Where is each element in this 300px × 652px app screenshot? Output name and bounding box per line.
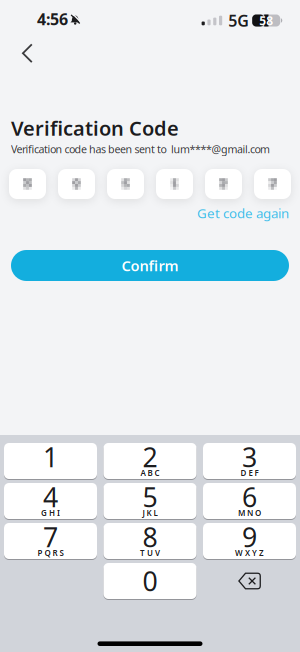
staticText: 6 [242, 479, 257, 515]
button[interactable]: Code digit 1 [9, 169, 46, 199]
staticText: A B C [140, 468, 159, 478]
button[interactable]: 0 [103, 563, 196, 599]
staticText: D E F [240, 468, 258, 478]
staticText: M N O [238, 508, 261, 518]
button[interactable]: Code digit 2 [58, 169, 95, 199]
staticText: 3 [242, 439, 257, 475]
staticText: 0 [142, 563, 157, 599]
staticText: P Q R S [37, 548, 63, 558]
button[interactable]: Back [0, 44, 33, 63]
button[interactable]: Code digit 5 [205, 169, 242, 199]
button[interactable]: 3 [203, 443, 296, 479]
staticText: W X Y Z [235, 548, 264, 558]
button[interactable]: 6 [203, 483, 296, 519]
staticText: Get code again [197, 204, 289, 222]
button[interactable]: 5 [103, 483, 196, 519]
staticText: 9 [242, 519, 257, 555]
button[interactable]: Code digit 3 [107, 169, 144, 199]
staticText: 58 [259, 12, 273, 28]
staticText: J K L [142, 508, 157, 518]
staticText: 4 [43, 479, 58, 515]
button[interactable]: 8 [103, 523, 196, 559]
button[interactable]: 7 [4, 523, 97, 559]
button[interactable]: Get code again [197, 204, 300, 222]
staticText: Verification Code [11, 115, 179, 141]
staticText: G H I [41, 508, 60, 518]
staticText: 1 [43, 439, 58, 475]
staticText: 2 [142, 439, 157, 475]
staticText: 5G [228, 10, 249, 31]
staticText: 5 [142, 479, 157, 515]
staticText: Verification code has been sent to lum**… [11, 142, 270, 156]
button[interactable]: 4 [4, 483, 97, 519]
button[interactable]: 2 [103, 443, 196, 479]
button[interactable]: Code digit 4 [156, 169, 193, 199]
staticText: 8 [142, 519, 157, 555]
staticText: Confirm [121, 256, 178, 275]
staticText: 7 [43, 519, 58, 555]
button[interactable]: Delete [203, 563, 296, 599]
button[interactable]: Confirm [0, 250, 300, 281]
staticText: T U V [140, 548, 160, 558]
staticText: 4:56 [37, 8, 68, 30]
button[interactable]: 9 [203, 523, 296, 559]
button[interactable]: 1 [4, 443, 97, 479]
button[interactable]: Code digit 6 [254, 169, 291, 199]
